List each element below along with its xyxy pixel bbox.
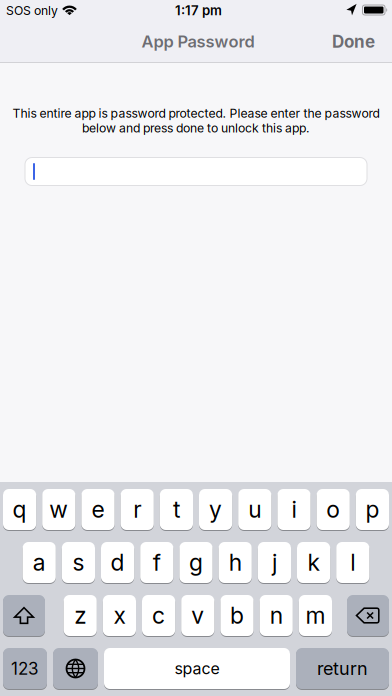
button[interactable]: k	[297, 542, 330, 583]
button[interactable]: return	[296, 648, 389, 689]
staticText: k	[308, 549, 320, 576]
staticText: h	[229, 549, 242, 576]
staticText: g	[189, 549, 203, 576]
staticText: SOS only	[6, 3, 58, 18]
staticText: space	[174, 659, 219, 678]
staticText: f	[153, 549, 161, 576]
button[interactable]: e	[81, 489, 115, 530]
button[interactable]: s	[62, 542, 95, 583]
staticText: o	[326, 496, 340, 523]
button[interactable]: z	[64, 595, 97, 636]
button[interactable]: Done	[332, 31, 392, 52]
staticText: e	[91, 496, 104, 523]
button[interactable]: p	[356, 489, 389, 530]
staticText: below and press done to unlock this app.	[82, 121, 310, 136]
button[interactable]: g	[179, 542, 213, 583]
button[interactable]: h	[219, 542, 252, 583]
button[interactable]: Password	[25, 157, 367, 185]
button[interactable]: d	[101, 542, 134, 583]
button[interactable]: space	[104, 648, 290, 689]
button[interactable]: q	[3, 489, 36, 530]
staticText: c	[152, 602, 165, 629]
staticText: n	[270, 602, 283, 629]
button[interactable]: m	[299, 595, 332, 636]
staticText: l	[350, 549, 355, 576]
button[interactable]: 123	[3, 648, 47, 689]
button[interactable]: Shift	[3, 595, 45, 636]
staticText: 123	[11, 658, 39, 679]
button[interactable]: v	[181, 595, 214, 636]
staticText: t	[173, 496, 180, 523]
button[interactable]: o	[317, 489, 350, 530]
staticText: d	[111, 549, 125, 576]
staticText: p	[365, 496, 379, 523]
button[interactable]: f	[140, 542, 173, 583]
staticText: a	[33, 549, 46, 576]
staticText: m	[305, 602, 325, 629]
staticText: i	[291, 496, 296, 523]
button[interactable]: n	[260, 595, 293, 636]
button[interactable]: Next keyboard	[53, 648, 98, 689]
staticText: return	[317, 658, 368, 679]
staticText: w	[49, 496, 68, 523]
staticText: b	[230, 602, 244, 629]
staticText: z	[74, 602, 86, 629]
staticText: 1:17 pm	[175, 2, 222, 18]
button[interactable]: r	[121, 489, 154, 530]
button[interactable]: x	[103, 595, 136, 636]
staticText: App Password	[141, 31, 254, 51]
staticText: r	[133, 496, 141, 523]
staticText: s	[72, 549, 84, 576]
staticText: Done	[332, 31, 375, 52]
button[interactable]: a	[23, 542, 56, 583]
staticText: This entire app is password protected. P…	[12, 106, 379, 121]
staticText: q	[13, 496, 27, 523]
button[interactable]: w	[42, 489, 75, 530]
staticText: v	[191, 602, 204, 629]
button[interactable]: l	[336, 542, 369, 583]
staticText: x	[113, 602, 125, 629]
button[interactable]: b	[220, 595, 254, 636]
button[interactable]: c	[142, 595, 175, 636]
staticText: j	[272, 549, 277, 576]
button[interactable]: Delete	[347, 595, 389, 636]
button[interactable]: y	[199, 489, 232, 530]
button[interactable]: t	[160, 489, 193, 530]
staticText: y	[209, 496, 222, 523]
button[interactable]: j	[258, 542, 291, 583]
button[interactable]: u	[238, 489, 271, 530]
staticText: u	[248, 496, 261, 523]
button[interactable]: i	[277, 489, 311, 530]
